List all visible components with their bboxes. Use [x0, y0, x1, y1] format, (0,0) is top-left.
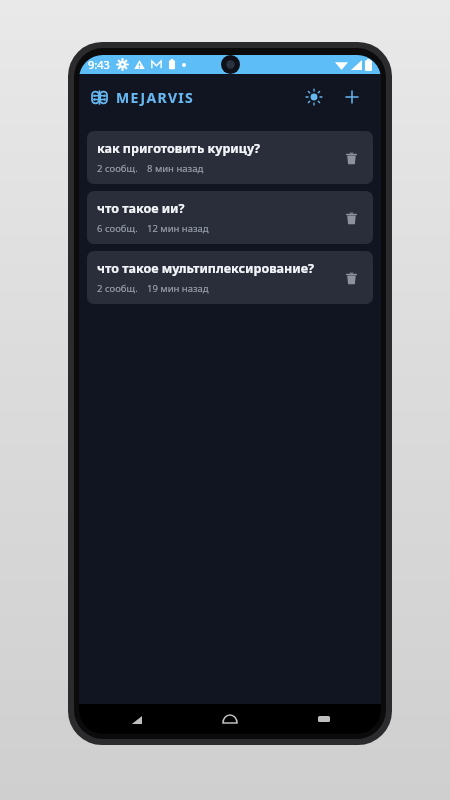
staticText: что такое мультиплексирование? — [97, 260, 314, 277]
button[interactable]: Toggle theme — [297, 80, 331, 114]
staticText: MEJARVIS — [116, 88, 195, 107]
staticText: что такое ии? — [97, 200, 185, 217]
staticText: 8 мин назад — [147, 162, 204, 175]
button[interactable]: Delete chat — [335, 262, 367, 294]
button[interactable]: New chat — [335, 80, 369, 114]
button[interactable]: Delete chat — [335, 142, 367, 174]
staticText: 9:43 — [88, 57, 110, 72]
button[interactable]: Home — [217, 706, 243, 732]
staticText: 12 мин назад — [147, 222, 209, 235]
button[interactable]: Delete chat — [335, 202, 367, 234]
staticText: 6 сообщ. — [97, 222, 138, 235]
button[interactable]: MEJARVIS — [91, 88, 199, 107]
button[interactable]: что такое ии? — [87, 191, 373, 244]
button[interactable]: как приготовить курицу? — [87, 131, 373, 184]
staticText: 2 сообщ. — [97, 282, 138, 295]
staticText: 2 сообщ. — [97, 162, 138, 175]
staticText: 19 мин назад — [147, 282, 209, 295]
staticText: как приготовить курицу? — [97, 140, 260, 157]
button[interactable]: что такое мультиплексирование? — [87, 251, 373, 304]
button[interactable]: Back — [123, 706, 149, 732]
button[interactable]: Recents — [311, 706, 337, 732]
